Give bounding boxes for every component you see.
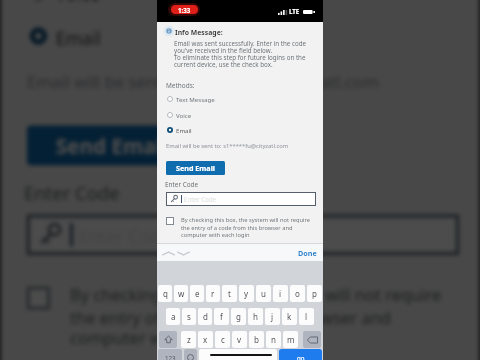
button[interactable]: s — [182, 308, 196, 325]
button[interactable]: e — [190, 285, 204, 302]
button[interactable]: v — [232, 331, 247, 348]
staticText: Enter Code — [79, 223, 174, 246]
staticText: Email will be sent to: s1*****fu@cityzat… — [27, 71, 381, 94]
staticText: i — [279, 288, 282, 299]
button[interactable]: l — [299, 308, 314, 325]
button[interactable]: Enter Code — [27, 215, 459, 255]
button[interactable]: b — [249, 331, 264, 348]
staticText: y — [244, 288, 249, 299]
button[interactable]: By checking this box, the system will no… — [27, 287, 453, 350]
staticText: Enter Code — [165, 180, 199, 189]
staticText: j — [271, 311, 274, 322]
button[interactable]: Text Message — [165, 92, 315, 105]
button[interactable]: q — [158, 285, 172, 302]
staticText: w — [178, 288, 185, 299]
staticText: u — [261, 288, 266, 299]
button[interactable]: Shift — [159, 331, 177, 348]
staticText: Info Message: — [175, 28, 223, 37]
button[interactable]: i — [273, 285, 288, 302]
staticText: m — [287, 334, 295, 345]
staticText: 123 — [165, 354, 176, 360]
button[interactable]: h — [248, 308, 263, 325]
button[interactable]: Done — [298, 248, 317, 258]
button[interactable]: Voice — [24, 0, 456, 10]
button[interactable]: o — [290, 285, 305, 302]
staticText: Email was sent successfully. Enter in th… — [174, 39, 306, 69]
button[interactable]: y — [239, 285, 254, 302]
staticText: Voice — [176, 111, 192, 119]
staticText: Methods: — [166, 81, 195, 90]
button[interactable]: f — [214, 308, 229, 325]
staticText: 1:33 — [178, 6, 191, 14]
button[interactable] — [199, 349, 277, 360]
staticText: b — [254, 334, 259, 345]
staticText: go — [297, 354, 305, 360]
button[interactable]: Enter Code — [166, 192, 316, 206]
staticText: r — [211, 288, 215, 299]
staticText: x — [203, 334, 208, 345]
staticText: f — [220, 311, 223, 322]
button[interactable]: g — [231, 308, 246, 325]
staticText: l — [305, 311, 308, 322]
button[interactable]: a — [166, 308, 180, 325]
staticText: d — [203, 311, 208, 322]
staticText: p — [312, 288, 317, 299]
staticText: LTE — [289, 7, 300, 15]
staticText: Enter Code — [24, 180, 122, 206]
staticText: a — [171, 311, 176, 322]
staticText: o — [295, 288, 300, 299]
button[interactable]: Previous field — [161, 247, 176, 260]
button[interactable]: n — [266, 331, 281, 348]
staticText: Send Email — [56, 131, 168, 160]
button[interactable]: w — [174, 285, 188, 302]
staticText: z — [187, 334, 191, 345]
button[interactable]: r — [206, 285, 220, 302]
button[interactable]: Voice — [165, 108, 315, 121]
staticText: Send Email — [176, 163, 215, 173]
button[interactable]: p — [307, 285, 322, 302]
staticText: Enter Code — [184, 195, 217, 203]
staticText: t — [228, 288, 231, 299]
button[interactable]: c — [215, 331, 230, 348]
staticText: k — [287, 311, 292, 322]
button[interactable]: Send Email — [27, 125, 197, 166]
button[interactable]: d — [198, 308, 212, 325]
button[interactable]: t — [222, 285, 237, 302]
button[interactable]: u — [256, 285, 271, 302]
button[interactable]: go — [279, 349, 322, 360]
button[interactable]: Backspace — [303, 331, 321, 348]
button[interactable]: Email — [24, 16, 456, 53]
button[interactable]: Next field — [176, 247, 191, 260]
staticText: Voice — [56, 0, 102, 4]
staticText: n — [271, 334, 276, 345]
staticText: Email — [176, 126, 192, 134]
staticText: e — [195, 288, 200, 299]
staticText: Email will be sent to: s1*****fu@cityzat… — [166, 142, 289, 150]
staticText: By checking this box, the system will no… — [70, 284, 442, 347]
staticText: g — [236, 311, 241, 322]
staticText: c — [221, 334, 225, 345]
button[interactable]: Numbers — [158, 349, 182, 360]
button[interactable]: Emoji — [184, 349, 197, 360]
button[interactable]: k — [282, 308, 297, 325]
staticText: Done — [298, 248, 317, 258]
staticText: v — [237, 334, 242, 345]
button[interactable]: Send Email — [166, 161, 225, 175]
staticText: s — [187, 311, 191, 322]
button[interactable]: z — [181, 331, 196, 348]
staticText: Email — [56, 24, 102, 47]
button[interactable]: m — [283, 331, 298, 348]
button[interactable]: j — [265, 308, 280, 325]
staticText: h — [253, 311, 258, 322]
staticText: By checking this box, the system will no… — [181, 216, 310, 238]
button[interactable]: Email — [165, 123, 315, 136]
button[interactable]: By checking this box, the system will no… — [166, 217, 314, 239]
staticText: q — [163, 288, 168, 299]
staticText: Text Message — [176, 95, 215, 103]
button[interactable]: x — [198, 331, 213, 348]
